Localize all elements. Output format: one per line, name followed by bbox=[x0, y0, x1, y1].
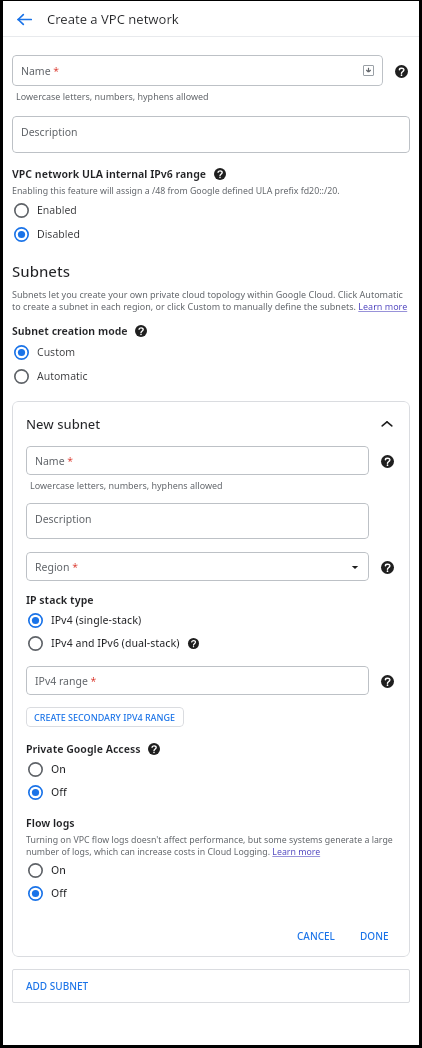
button[interactable]: Help bbox=[378, 672, 396, 690]
staticText: Off bbox=[51, 785, 67, 799]
button[interactable]: New subnet bbox=[26, 415, 396, 433]
staticText: Subnet creation mode bbox=[12, 324, 128, 338]
button[interactable]: Enabled bbox=[12, 200, 410, 220]
staticText: DONE bbox=[360, 929, 389, 943]
staticText: VPC network ULA internal IPv6 range bbox=[12, 167, 207, 181]
button[interactable]: On bbox=[26, 860, 396, 880]
button[interactable]: ADD SUBNET bbox=[12, 969, 410, 1003]
button[interactable]: DONE bbox=[353, 925, 396, 947]
staticText: Lowercase letters, numbers, hyphens allo… bbox=[30, 479, 223, 491]
staticText: Private Google Access bbox=[26, 742, 141, 756]
button[interactable]: Automatic bbox=[12, 366, 410, 386]
staticText: Enabled bbox=[37, 203, 77, 217]
button[interactable]: Disabled bbox=[12, 224, 410, 244]
staticText: CANCEL bbox=[297, 929, 335, 943]
button[interactable]: Help bbox=[392, 62, 410, 80]
button[interactable]: Help bbox=[378, 452, 396, 470]
staticText: Region * bbox=[35, 560, 78, 574]
button[interactable]: Region * bbox=[26, 552, 369, 581]
button[interactable]: IPv4 and IPv6 (dual-stack) bbox=[26, 633, 396, 653]
button[interactable]: Back bbox=[11, 6, 37, 32]
staticText: On bbox=[51, 762, 66, 776]
staticText: Lowercase letters, numbers, hyphens allo… bbox=[16, 90, 209, 102]
staticText: Off bbox=[51, 886, 67, 900]
staticText: Enabling this feature will assign a /48 … bbox=[12, 185, 340, 197]
staticText: Create a VPC network bbox=[47, 10, 179, 28]
button[interactable]: Name * bbox=[26, 446, 369, 475]
button[interactable]: CREATE SECONDARY IPV4 RANGE bbox=[26, 707, 184, 727]
staticText: IPv4 and IPv6 (dual-stack) bbox=[51, 636, 180, 650]
staticText: CREATE SECONDARY IPV4 RANGE bbox=[34, 711, 176, 723]
staticText: Custom bbox=[37, 345, 76, 359]
staticText: Name * bbox=[21, 64, 60, 78]
button[interactable]: Off bbox=[26, 883, 396, 903]
staticText: On bbox=[51, 863, 66, 877]
staticText: Subnets bbox=[12, 261, 71, 281]
other: Insert bbox=[363, 65, 374, 76]
staticText: Flow logs bbox=[26, 816, 75, 830]
button[interactable]: CANCEL bbox=[290, 925, 342, 947]
button[interactable]: IPv4 (single-stack) bbox=[26, 610, 396, 630]
other: Collapse bbox=[378, 415, 396, 433]
staticText: IP stack type bbox=[26, 593, 94, 607]
other: Open dropdown bbox=[350, 562, 360, 572]
button[interactable]: Help bbox=[378, 558, 396, 576]
button[interactable]: Custom bbox=[12, 342, 410, 362]
staticText: IPv4 (single-stack) bbox=[51, 613, 142, 627]
staticText: Automatic bbox=[37, 369, 88, 383]
button[interactable]: Description bbox=[26, 503, 369, 539]
staticText: Name * bbox=[35, 454, 74, 468]
button[interactable]: On bbox=[26, 759, 396, 779]
staticText: Description bbox=[35, 512, 92, 526]
button[interactable]: Off bbox=[26, 782, 396, 802]
staticText: ADD SUBNET bbox=[26, 979, 89, 993]
staticText: Turning on VPC flow logs doesn't affect … bbox=[26, 834, 396, 858]
staticText: New subnet bbox=[26, 415, 101, 433]
staticText: Subnets let you create your own private … bbox=[12, 288, 410, 313]
button[interactable]: Name * bbox=[12, 55, 383, 86]
button[interactable]: IPv4 range * bbox=[26, 666, 369, 695]
button[interactable]: Description bbox=[12, 116, 410, 153]
staticText: Description bbox=[21, 125, 78, 139]
staticText: Disabled bbox=[37, 227, 80, 241]
staticText: IPv4 range * bbox=[35, 674, 97, 688]
